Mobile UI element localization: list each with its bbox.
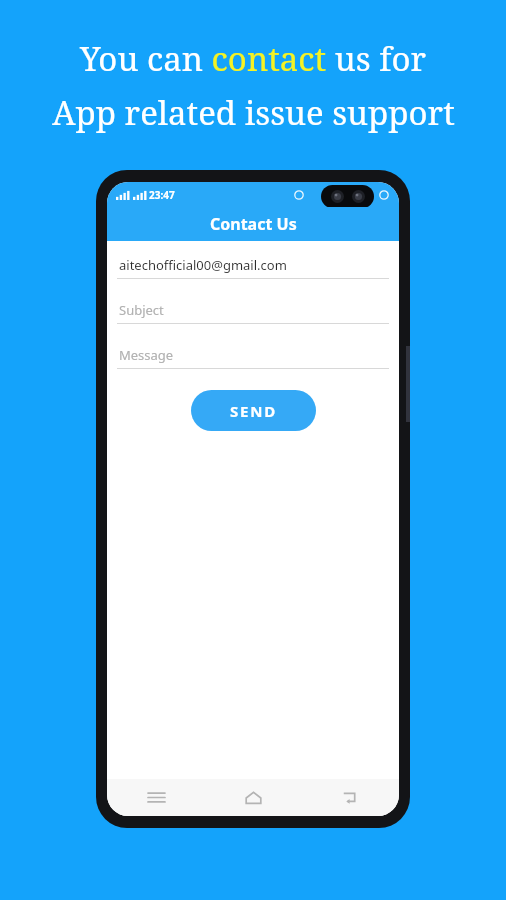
button[interactable]: Message [107, 342, 399, 369]
staticText: SEND [230, 401, 278, 421]
button[interactable]: SEND [191, 390, 316, 431]
button[interactable]: Home [205, 779, 302, 816]
staticText: Subject [119, 301, 164, 319]
button[interactable]: Back [302, 779, 399, 816]
staticText: Contact Us [210, 213, 297, 235]
button[interactable]: Recents [107, 779, 205, 816]
button[interactable]: Subject [107, 297, 399, 324]
staticText: Message [119, 346, 174, 364]
staticText: You can contact us for [80, 36, 426, 81]
staticText: aitechofficial00@gmail.com [119, 256, 287, 274]
button[interactable]: aitechofficial00@gmail.com [107, 252, 399, 279]
staticText: 23:47 [149, 188, 175, 202]
staticText: App related issue support [52, 90, 455, 135]
